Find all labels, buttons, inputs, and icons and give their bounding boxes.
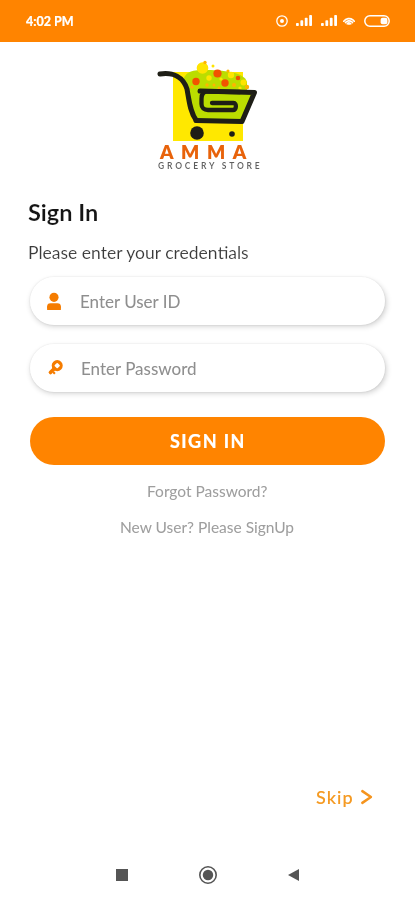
button[interactable]: Skip (308, 781, 380, 813)
staticText: Please enter your credentials (28, 242, 249, 263)
staticText: GROCERY STORE (158, 161, 263, 171)
button[interactable]: Password field (30, 344, 385, 392)
staticText: 4:02 PM (26, 14, 74, 29)
button[interactable]: Recents (100, 853, 144, 897)
staticText: Enter Password (81, 358, 197, 378)
button[interactable]: New User? Please SignUp (112, 515, 303, 540)
staticText: Skip (316, 786, 354, 808)
button[interactable]: User ID field (30, 277, 385, 325)
staticText: SIGN IN (170, 430, 246, 452)
button[interactable]: Back (271, 853, 315, 897)
button[interactable]: Forgot Password? (139, 479, 276, 504)
staticText: Enter User ID (80, 291, 181, 311)
staticText: AMMA (160, 140, 254, 163)
staticText: Sign In (28, 198, 99, 226)
button[interactable]: SIGN IN (30, 417, 385, 465)
button[interactable]: Home (186, 853, 230, 897)
